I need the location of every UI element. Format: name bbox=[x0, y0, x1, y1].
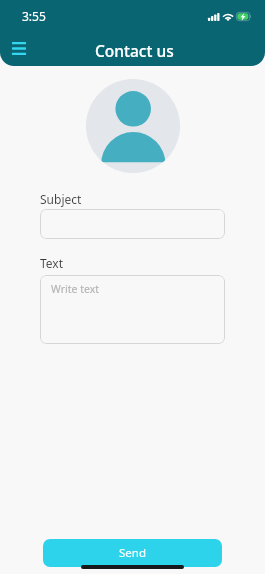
staticText: Text bbox=[40, 255, 64, 271]
button[interactable]: Menu bbox=[4, 33, 34, 63]
staticText: Subject bbox=[40, 191, 82, 207]
button[interactable]: Write text bbox=[40, 275, 225, 344]
staticText: Send bbox=[119, 545, 146, 561]
button[interactable] bbox=[40, 209, 225, 239]
staticText: Contact us bbox=[95, 40, 174, 61]
staticText: 3:55 bbox=[22, 8, 46, 24]
button[interactable]: Send bbox=[43, 539, 222, 567]
staticText: Write text bbox=[51, 282, 99, 296]
